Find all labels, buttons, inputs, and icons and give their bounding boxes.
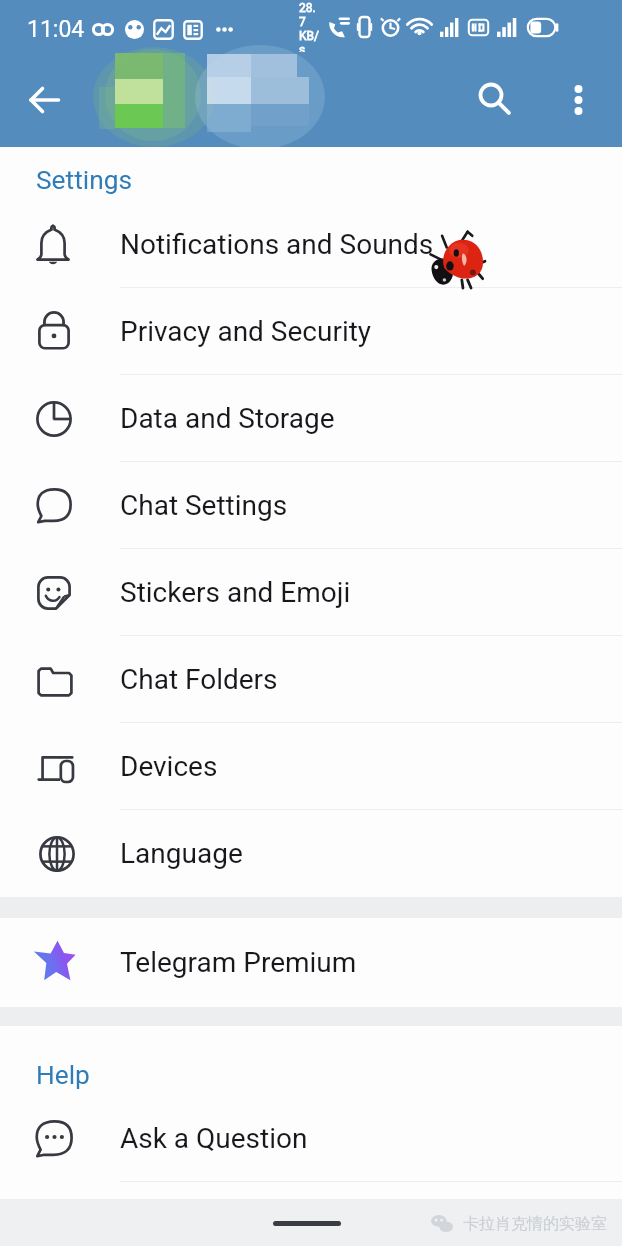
- staticText: Telegram Premium: [120, 946, 357, 979]
- staticText: Language: [120, 837, 243, 870]
- button[interactable]: Ask a Question: [0, 1095, 622, 1182]
- button[interactable]: Search: [467, 72, 523, 128]
- staticText: Data and Storage: [120, 402, 335, 435]
- staticText: Privacy and Security: [120, 315, 372, 348]
- button[interactable]: Back: [16, 72, 72, 128]
- staticText: Chat Folders: [120, 663, 278, 696]
- button[interactable]: Telegram Premium: [0, 918, 622, 1007]
- button[interactable]: Notifications and Sounds: [0, 201, 622, 288]
- button[interactable]: More options: [552, 74, 604, 126]
- button[interactable]: Chat Folders: [0, 636, 622, 723]
- button[interactable]: Devices: [0, 723, 622, 810]
- button[interactable]: Stickers and Emoji: [0, 549, 622, 636]
- button[interactable]: Language: [0, 810, 622, 897]
- staticText: Devices: [120, 750, 218, 783]
- button[interactable]: Chat Settings: [0, 462, 622, 549]
- button[interactable]: Privacy and Security: [0, 288, 622, 375]
- staticText: 卡拉肖克情的实验室: [463, 1214, 607, 1234]
- staticText: Notifications and Sounds: [120, 228, 434, 261]
- staticText: KB/s: [299, 29, 320, 53]
- staticText: Ask a Question: [120, 1122, 308, 1155]
- staticText: Stickers and Emoji: [120, 576, 351, 609]
- staticText: 11:04: [27, 16, 85, 43]
- staticText: Settings: [36, 165, 133, 196]
- staticText: 28.7: [299, 1, 320, 29]
- button[interactable]: Data and Storage: [0, 375, 622, 462]
- staticText: Chat Settings: [120, 489, 288, 522]
- staticText: Help: [36, 1060, 90, 1091]
